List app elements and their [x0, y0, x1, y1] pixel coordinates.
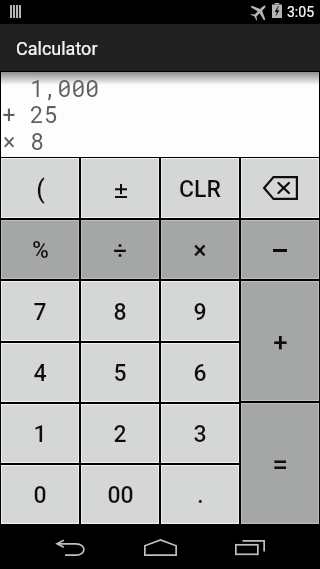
button[interactable]: 0 — [1, 465, 79, 524]
button[interactable]: 1 — [1, 404, 79, 463]
button[interactable]: Backspace — [241, 158, 319, 218]
staticText: 1,000 — [30, 73, 100, 103]
button[interactable]: ÷ — [81, 220, 159, 279]
staticText: 1 — [33, 421, 47, 448]
button[interactable]: 5 — [81, 343, 159, 402]
staticText: + — [273, 327, 288, 357]
button[interactable]: 8 — [81, 281, 159, 341]
button[interactable]: 3 — [161, 404, 239, 463]
button[interactable]: × — [161, 220, 239, 279]
button[interactable]: ( — [1, 158, 79, 218]
button[interactable]: 2 — [81, 404, 159, 463]
button[interactable]: Recent apps — [228, 527, 272, 569]
staticText: 2 — [113, 421, 127, 448]
button[interactable]: + — [241, 281, 319, 401]
staticText: % — [32, 237, 49, 264]
button[interactable]: 4 — [1, 343, 79, 402]
button[interactable]: CLR — [161, 158, 239, 218]
staticText: 3 — [193, 421, 207, 448]
staticText: 0 — [33, 482, 47, 509]
staticText: ( — [36, 175, 45, 204]
staticText: + — [2, 99, 16, 129]
button[interactable]: = — [241, 403, 319, 524]
button[interactable]: . — [161, 465, 239, 524]
staticText: 00 — [107, 482, 134, 509]
staticText: × — [2, 126, 16, 156]
staticText: 25 — [30, 99, 58, 129]
button[interactable]: 9 — [161, 281, 239, 341]
button[interactable]: Plus or minus — [81, 158, 159, 218]
button[interactable]: 6 — [161, 343, 239, 402]
staticText: 8 — [30, 126, 44, 156]
staticText: 6 — [193, 360, 207, 387]
button[interactable]: Home — [138, 526, 182, 569]
button[interactable]: Minus — [241, 220, 319, 279]
staticText: = — [272, 448, 288, 481]
staticText: . — [197, 482, 204, 509]
button[interactable]: 7 — [1, 281, 79, 341]
staticText: Calculator — [16, 38, 98, 59]
staticText: CLR — [179, 176, 221, 203]
staticText: 7 — [33, 299, 47, 326]
staticText: 3:05 — [287, 4, 314, 20]
staticText: 4 — [33, 360, 47, 387]
button[interactable]: Back — [49, 527, 93, 569]
staticText: 5 — [113, 360, 127, 387]
button[interactable]: 00 — [81, 465, 159, 524]
staticText: 9 — [193, 299, 207, 326]
button[interactable]: % — [1, 220, 79, 279]
staticText: 8 — [113, 299, 127, 326]
staticText: × — [193, 236, 207, 265]
staticText: ÷ — [113, 237, 127, 265]
